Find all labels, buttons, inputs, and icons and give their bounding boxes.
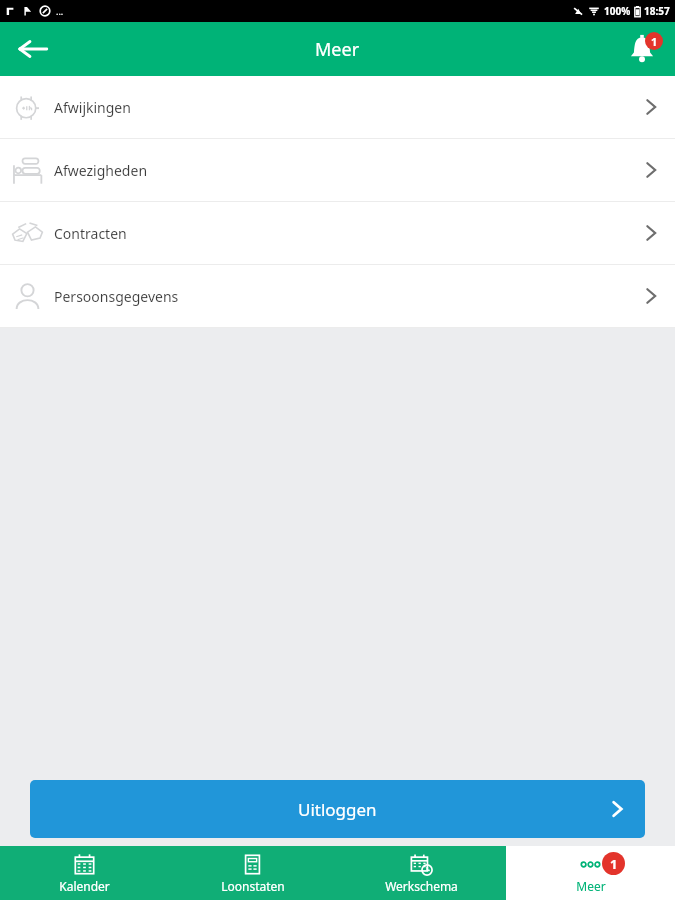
staticText: 1 <box>610 855 618 873</box>
staticText: Loonstaten <box>221 878 285 894</box>
staticText: Meer <box>315 37 360 62</box>
staticText: Persoonsgegevens <box>54 287 179 306</box>
button[interactable]: Back <box>10 26 56 72</box>
staticText: 100% <box>604 4 631 18</box>
staticText: Afwezigheden <box>54 161 148 180</box>
button[interactable]: Meer <box>506 846 675 900</box>
button[interactable]: Notifications <box>619 26 665 72</box>
button[interactable]: Loonstaten <box>168 846 337 900</box>
button[interactable]: Werkschema <box>337 846 506 900</box>
staticText: Uitloggen <box>298 798 377 821</box>
button[interactable]: Contracten <box>0 202 675 264</box>
staticText: Kalender <box>59 878 110 894</box>
staticText: Meer <box>576 878 606 894</box>
staticText: Contracten <box>54 224 127 243</box>
button[interactable]: Afwijkingen <box>0 76 675 138</box>
button[interactable]: Uitloggen <box>30 780 645 838</box>
staticText: 1 <box>651 34 658 49</box>
button[interactable]: Kalender <box>0 846 168 900</box>
staticText: Afwijkingen <box>54 98 131 117</box>
button[interactable]: Persoonsgegevens <box>0 265 675 327</box>
staticText: Werkschema <box>385 878 458 894</box>
staticText: ... <box>56 5 64 17</box>
staticText: 18:57 <box>644 4 670 18</box>
button[interactable]: Afwezigheden <box>0 139 675 201</box>
